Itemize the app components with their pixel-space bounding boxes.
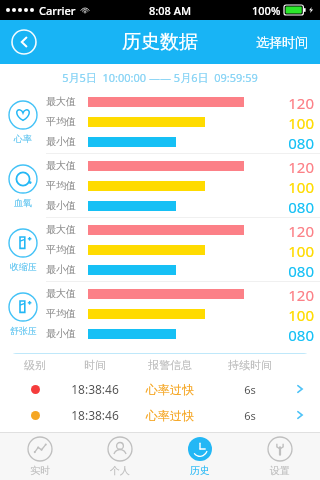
staticText: 080 (270, 133, 314, 150)
staticText: 120 (270, 157, 314, 174)
button[interactable]: 设置 (240, 432, 320, 480)
staticText: 最大值 (46, 159, 88, 172)
button[interactable]: 实时 (0, 432, 80, 480)
staticText: Carrier (39, 3, 76, 18)
staticText: 最小值 (46, 135, 88, 148)
staticText: 最大值 (46, 287, 88, 300)
button[interactable]: 选择时间 (256, 34, 308, 50)
staticText: 报警信息 (130, 358, 210, 372)
button[interactable]: 个人 (80, 432, 160, 480)
staticText: 最小值 (46, 199, 88, 212)
staticText: 舒张压 (10, 325, 37, 336)
staticText: 历史 (190, 464, 210, 477)
staticText: 级别 (10, 358, 60, 372)
staticText: 血氧 (14, 197, 32, 208)
staticText: 最大值 (46, 95, 88, 108)
staticText: 最大值 (46, 223, 88, 236)
staticText: 实时 (30, 464, 50, 477)
staticText: 时间 (60, 358, 130, 372)
staticText: 个人 (110, 464, 130, 477)
staticText: 持续时间 (210, 358, 290, 372)
staticText: 最小值 (46, 327, 88, 340)
staticText: 080 (270, 325, 314, 342)
staticText: 120 (270, 285, 314, 302)
staticText: 100% (252, 3, 281, 18)
button[interactable]: 历史 (160, 432, 240, 480)
staticText: 8:08 AM (149, 3, 192, 18)
staticText: 最小值 (46, 263, 88, 276)
button[interactable]: 18:38:46 (10, 376, 310, 402)
staticText: 120 (270, 221, 314, 238)
staticText: 120 (270, 93, 314, 110)
staticText: 收缩压 (10, 261, 37, 272)
staticText: 100 (270, 113, 314, 130)
staticText: 100 (270, 305, 314, 322)
staticText: 080 (270, 261, 314, 278)
staticText: 18:38:46 (60, 407, 130, 423)
staticText: 18:38:46 (60, 381, 130, 397)
button[interactable]: Back (8, 26, 40, 58)
staticText: 平均值 (46, 115, 88, 128)
staticText: 080 (270, 197, 314, 214)
staticText: 6s (210, 408, 290, 423)
staticText: 平均值 (46, 307, 88, 320)
staticText: 心率过快 (130, 408, 210, 423)
staticText: 100 (270, 177, 314, 194)
staticText: 心率 (14, 133, 32, 144)
staticText: 100 (270, 241, 314, 258)
staticText: 平均值 (46, 179, 88, 192)
staticText: 历史数据 (122, 30, 198, 54)
staticText: 平均值 (46, 243, 88, 256)
staticText: 5月5日 10:00:00 —— 5月6日 09:59:59 (62, 70, 258, 85)
staticText: 6s (210, 382, 290, 397)
button[interactable]: 18:38:46 (10, 402, 310, 428)
staticText: 心率过快 (130, 382, 210, 397)
staticText: 选择时间 (256, 34, 308, 50)
staticText: 设置 (270, 464, 290, 477)
